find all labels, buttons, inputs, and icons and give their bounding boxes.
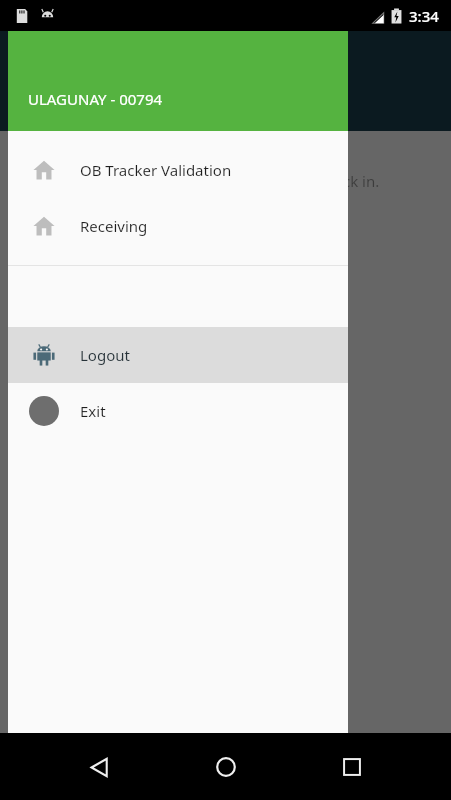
button[interactable]: OB Tracker Validation xyxy=(8,142,348,198)
button[interactable]: ULAGUNAY - 00794 xyxy=(8,31,348,131)
button[interactable]: Logout xyxy=(8,327,348,383)
staticText: Exit xyxy=(80,401,106,421)
staticText: 3:34 xyxy=(409,6,439,26)
staticText: ULAGUNAY - 00794 xyxy=(28,89,163,109)
staticText: Logout xyxy=(80,345,130,365)
button[interactable]: Home xyxy=(198,739,254,795)
button[interactable]: Receiving xyxy=(8,198,348,254)
staticText: ck in. xyxy=(343,171,380,191)
button[interactable]: Exit xyxy=(8,383,348,439)
button[interactable]: Recents xyxy=(324,739,380,795)
button[interactable]: Back xyxy=(71,739,127,795)
staticText: Receiving xyxy=(80,216,148,236)
staticText: OB Tracker Validation xyxy=(80,160,232,180)
